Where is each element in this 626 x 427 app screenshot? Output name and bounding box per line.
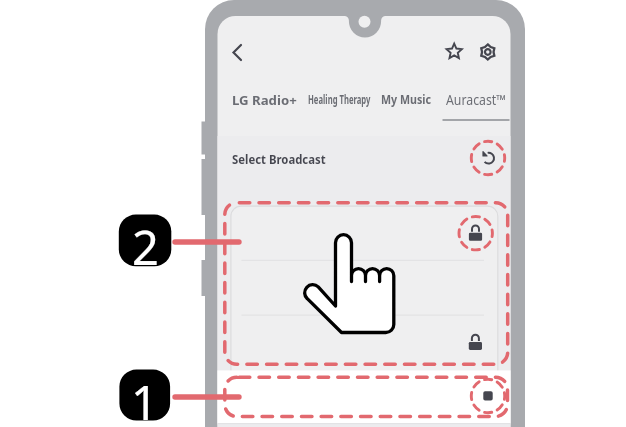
staticText: Select Broadcast <box>232 150 326 168</box>
button[interactable]: Stop broadcast <box>471 379 505 413</box>
button[interactable]: 1 <box>119 370 170 421</box>
button[interactable]: Auracast™ <box>446 90 506 109</box>
button[interactable]: Locked broadcast <box>459 326 493 360</box>
button[interactable]: Locked broadcast <box>459 217 493 251</box>
button[interactable]: Back <box>224 38 254 68</box>
button[interactable]: Favourite <box>440 38 470 68</box>
button[interactable]: Healing Therapy <box>308 90 371 107</box>
button[interactable]: Refresh broadcast list <box>472 142 505 175</box>
button[interactable]: Select Broadcast <box>232 150 326 168</box>
staticText: Auracast™ <box>446 90 506 109</box>
staticText: My Music <box>381 91 432 107</box>
staticText: 2 <box>132 215 159 267</box>
staticText: 1 <box>131 370 158 421</box>
button[interactable]: Broadcast 2, stop <box>218 370 511 423</box>
staticText: Healing Therapy <box>308 90 371 107</box>
button[interactable]: Settings <box>473 38 503 68</box>
button[interactable]: LG Radio+ <box>232 91 297 108</box>
staticText: LG Radio+ <box>232 91 297 108</box>
button[interactable]: 2 <box>119 215 172 267</box>
button[interactable]: My Music <box>381 91 432 107</box>
button[interactable]: Broadcast 1, locked <box>231 206 498 370</box>
